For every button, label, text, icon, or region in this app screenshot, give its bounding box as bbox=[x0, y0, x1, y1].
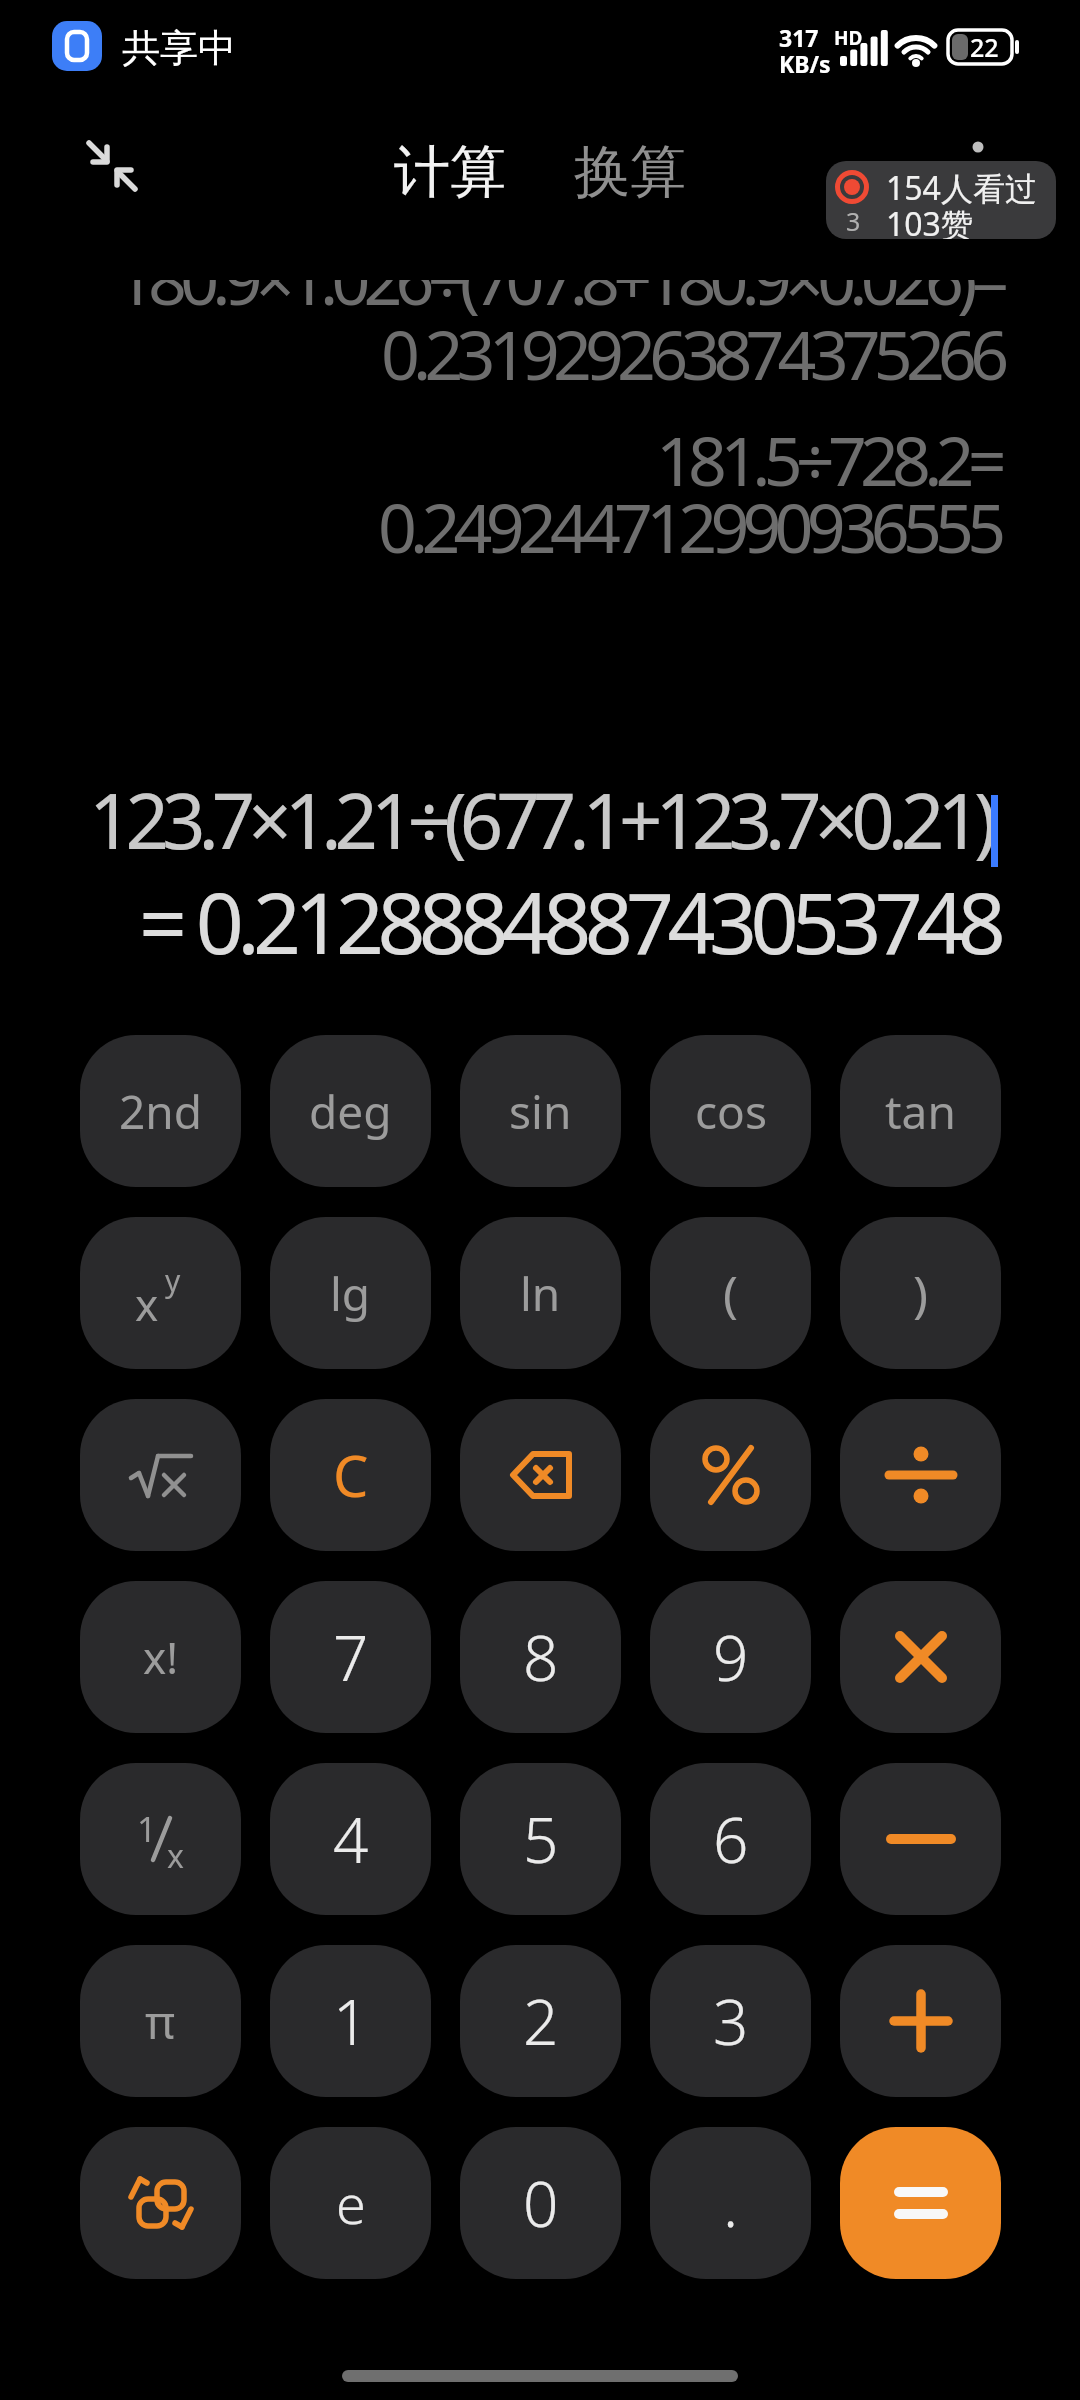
staticText: 1 bbox=[137, 1806, 157, 1852]
staticText: tan bbox=[885, 1080, 956, 1143]
staticText: lg bbox=[330, 1262, 371, 1325]
staticText: 7 bbox=[333, 1615, 369, 1699]
button[interactable]: 4 bbox=[270, 1763, 431, 1915]
staticText: 8 bbox=[523, 1615, 559, 1699]
staticText: 2 bbox=[523, 1979, 559, 2063]
staticText: 6 bbox=[713, 1797, 749, 1881]
staticText: 3 bbox=[713, 1979, 749, 2063]
staticText: 181.5÷728.2= bbox=[656, 413, 1000, 506]
staticText: 4 bbox=[333, 1797, 369, 1881]
button[interactable] bbox=[840, 2127, 1001, 2279]
button[interactable] bbox=[650, 1399, 811, 1551]
button[interactable]: 换算 bbox=[574, 137, 686, 208]
staticText: KB/s bbox=[779, 48, 831, 79]
button[interactable] bbox=[840, 1945, 1001, 2097]
staticText: deg bbox=[309, 1080, 392, 1143]
staticText: 22 bbox=[970, 30, 999, 64]
button[interactable] bbox=[840, 1399, 1001, 1551]
staticText: 0 bbox=[523, 2161, 559, 2245]
button[interactable] bbox=[76, 130, 148, 202]
button[interactable]: 8 bbox=[460, 1581, 621, 1733]
staticText: sin bbox=[509, 1080, 572, 1143]
staticText: ln bbox=[520, 1262, 561, 1325]
staticText: . bbox=[723, 2161, 739, 2245]
staticText: 154人看过 bbox=[886, 166, 1037, 210]
button[interactable]: ( bbox=[650, 1217, 811, 1369]
staticText: cos bbox=[695, 1080, 767, 1143]
button[interactable]: 5 bbox=[460, 1763, 621, 1915]
button[interactable]: 计算 bbox=[394, 137, 506, 208]
staticText: π bbox=[145, 1990, 176, 2053]
button[interactable] bbox=[80, 2127, 241, 2279]
staticText: 180.9×1.026÷(707.8+180.9×0.026)= bbox=[116, 280, 1003, 325]
button[interactable]: 6 bbox=[650, 1763, 811, 1915]
button[interactable] bbox=[52, 21, 102, 71]
button[interactable]: 1 bbox=[270, 1945, 431, 2097]
button[interactable]: π bbox=[80, 1945, 241, 2097]
button[interactable]: lg bbox=[270, 1217, 431, 1369]
button[interactable]: 1 bbox=[80, 1763, 241, 1915]
staticText: 2nd bbox=[119, 1080, 203, 1143]
staticText: = 0.212888488743053748 bbox=[139, 864, 1000, 978]
button[interactable]: 9 bbox=[650, 1581, 811, 1733]
staticText: 换算 bbox=[574, 137, 686, 208]
button[interactable]: 2nd bbox=[80, 1035, 241, 1187]
staticText: ) bbox=[913, 1259, 928, 1327]
staticText: e bbox=[336, 2166, 366, 2240]
button[interactable]: C bbox=[270, 1399, 431, 1551]
staticText: 5 bbox=[523, 1797, 559, 1881]
staticText: 0.249244712990936555 bbox=[378, 480, 1000, 573]
button[interactable] bbox=[80, 1399, 241, 1551]
staticText: C bbox=[333, 1437, 369, 1513]
staticText: 103赞 bbox=[886, 202, 973, 239]
staticText: 计算 bbox=[394, 137, 506, 208]
button[interactable]: 7 bbox=[270, 1581, 431, 1733]
staticText: x bbox=[167, 1834, 184, 1878]
staticText: ( bbox=[723, 1259, 738, 1327]
button[interactable]: . bbox=[650, 2127, 811, 2279]
button[interactable] bbox=[840, 1763, 1001, 1915]
button[interactable]: ) bbox=[840, 1217, 1001, 1369]
staticText: 123.7×1.21÷(677.1+123.7×0.21) bbox=[89, 768, 990, 872]
button[interactable]: cos bbox=[650, 1035, 811, 1187]
button[interactable]: deg bbox=[270, 1035, 431, 1187]
button[interactable] bbox=[460, 1399, 621, 1551]
button[interactable]: ln bbox=[460, 1217, 621, 1369]
staticText: 317 bbox=[779, 22, 819, 53]
button[interactable]: tan bbox=[840, 1035, 1001, 1187]
staticText: x bbox=[135, 1274, 159, 1334]
button[interactable]: 3 bbox=[650, 1945, 811, 2097]
button[interactable]: sin bbox=[460, 1035, 621, 1187]
button[interactable]: x bbox=[80, 1217, 241, 1369]
button[interactable]: 2 bbox=[460, 1945, 621, 2097]
button[interactable]: e bbox=[270, 2127, 431, 2279]
staticText: 共享中 bbox=[122, 24, 236, 72]
button[interactable]: 3 bbox=[826, 161, 1056, 239]
button[interactable]: 0 bbox=[460, 2127, 621, 2279]
button[interactable]: x! bbox=[80, 1581, 241, 1733]
button[interactable] bbox=[840, 1581, 1001, 1733]
staticText: 3 bbox=[846, 204, 861, 238]
staticText: x! bbox=[143, 1627, 179, 1687]
staticText: HD bbox=[834, 25, 863, 51]
staticText: 0.231929263874375266 bbox=[381, 307, 1003, 400]
staticText: y bbox=[165, 1260, 181, 1301]
staticText: 1 bbox=[333, 1979, 369, 2063]
staticText: 9 bbox=[713, 1615, 749, 1699]
